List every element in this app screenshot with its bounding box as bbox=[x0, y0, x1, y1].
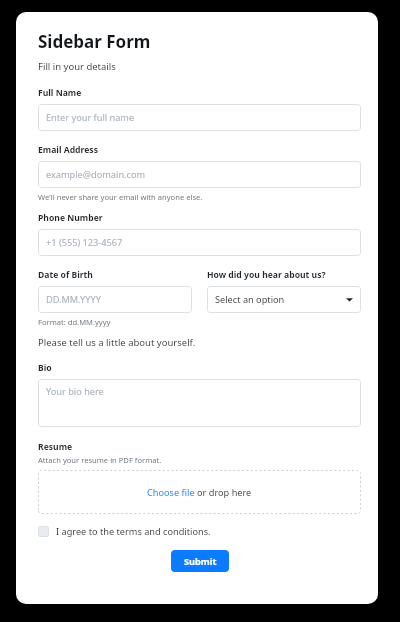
staticText: Phone Number bbox=[38, 212, 103, 224]
button[interactable]: Enter your full name bbox=[38, 104, 361, 131]
button[interactable]: Choose file or drop here bbox=[38, 470, 361, 514]
staticText: Full Name bbox=[38, 87, 82, 99]
staticText: I agree to the terms and conditions. bbox=[56, 525, 211, 538]
staticText: Email Address bbox=[38, 144, 98, 156]
button[interactable]: Your bio here bbox=[38, 379, 361, 427]
staticText: Select an option bbox=[215, 293, 346, 306]
staticText: Please tell us a little about yourself. bbox=[38, 336, 196, 349]
button[interactable]: example@domain.com bbox=[38, 161, 361, 188]
staticText: Date of Birth bbox=[38, 269, 93, 281]
staticText: Enter your full name bbox=[46, 111, 353, 124]
button[interactable]: Submit bbox=[171, 550, 229, 572]
staticText: Submit bbox=[184, 555, 217, 568]
staticText: Your bio here bbox=[46, 385, 104, 398]
staticText: +1 (555) 123-4567 bbox=[46, 236, 353, 249]
staticText: Sidebar Form bbox=[38, 30, 151, 53]
button[interactable]: DD.MM.YYYY bbox=[38, 286, 192, 313]
button[interactable]: I agree to the terms and conditions. bbox=[38, 525, 211, 538]
staticText: Choose file or drop here bbox=[147, 486, 252, 499]
button[interactable]: Select an option bbox=[207, 286, 361, 313]
staticText: DD.MM.YYYY bbox=[46, 293, 184, 306]
staticText: Fill in your details bbox=[38, 60, 116, 73]
staticText: example@domain.com bbox=[46, 168, 353, 181]
staticText: Attach your resume in PDF format. bbox=[38, 455, 162, 465]
staticText: How did you hear about us? bbox=[207, 269, 326, 281]
staticText: Format: dd.MM.yyyy bbox=[38, 317, 111, 327]
staticText: Resume bbox=[38, 441, 73, 453]
staticText: Bio bbox=[38, 362, 52, 374]
button[interactable]: +1 (555) 123-4567 bbox=[38, 229, 361, 256]
staticText: We'll never share your email with anyone… bbox=[38, 192, 203, 202]
